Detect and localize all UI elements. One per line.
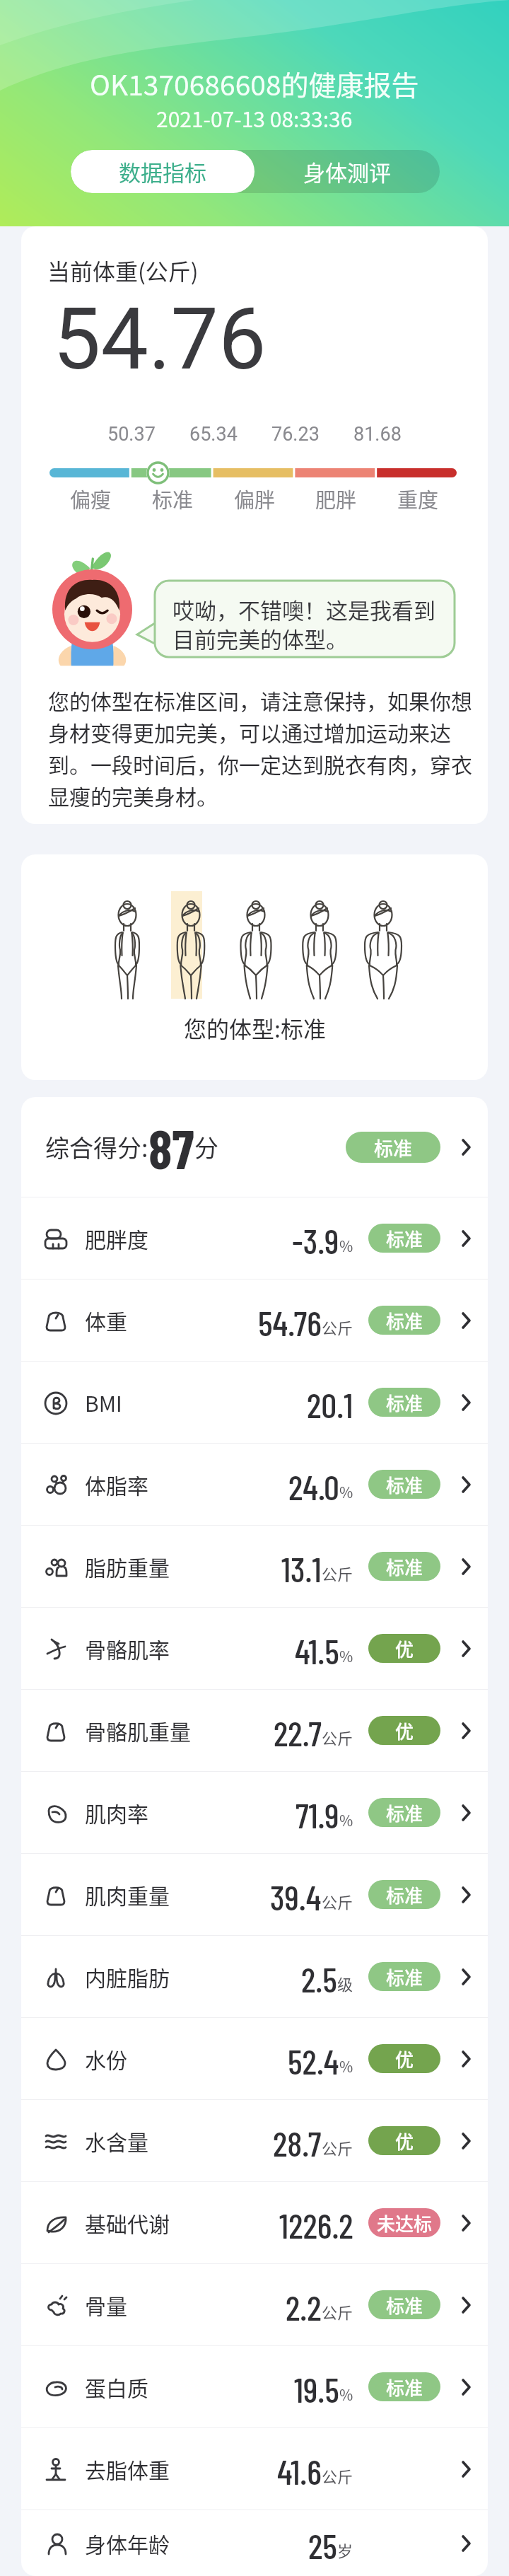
staticText: 岁 <box>337 2539 353 2561</box>
button[interactable]: 查看详情 <box>454 1135 479 1160</box>
staticText: % <box>339 1645 353 1666</box>
button[interactable]: 标准 <box>368 1798 440 1827</box>
staticText: 未达标 <box>377 2210 433 2236</box>
staticText: 标准 <box>386 1471 423 1498</box>
button[interactable]: 标准 <box>368 1306 440 1335</box>
staticText: 标准 <box>386 1963 423 1990</box>
staticText: 重度 <box>397 484 439 514</box>
staticText: 41.6 <box>277 2450 322 2492</box>
staticText: 2.5 <box>301 1958 337 2000</box>
button[interactable]: 脂肪重量 <box>21 1526 488 1607</box>
staticText: 当前体重(公斤) <box>47 254 199 286</box>
staticText: 优 <box>395 1635 414 1662</box>
button[interactable]: 蛋白质 <box>21 2346 488 2427</box>
staticText: 19.5 <box>294 2368 339 2410</box>
button[interactable]: 查看详情 <box>454 1882 479 1908</box>
staticText: 76.23 <box>271 423 320 446</box>
staticText: % <box>339 1809 353 1831</box>
button[interactable]: 水份 <box>21 2018 488 2099</box>
button[interactable]: 内脏脂肪 <box>21 1936 488 2017</box>
button[interactable]: 优 <box>368 2126 440 2155</box>
staticText: 体重 <box>85 1305 127 1335</box>
button[interactable]: 骨骼肌率 <box>21 1608 488 1689</box>
staticText: 公斤 <box>322 1316 353 1338</box>
staticText: 20.1 <box>307 1383 353 1425</box>
button[interactable]: 身体测评 <box>255 150 440 193</box>
button[interactable]: 查看详情 <box>454 1964 479 1990</box>
staticText: 54.76 <box>53 290 267 390</box>
staticText: 39.4 <box>270 1876 322 1918</box>
staticText: 13.1 <box>281 1548 322 1589</box>
button[interactable]: 查看详情 <box>454 1308 479 1333</box>
button[interactable]: 基础代谢 <box>21 2182 488 2263</box>
button[interactable]: 标准 <box>368 1470 440 1499</box>
button[interactable]: 水含量 <box>21 2100 488 2181</box>
staticText: 去脂体重 <box>85 2454 170 2484</box>
button[interactable]: 查看详情 <box>454 1718 479 1744</box>
staticText: 水份 <box>85 2043 127 2074</box>
staticText: 优 <box>395 1717 414 1744</box>
staticText: -3.9 <box>292 1219 339 1261</box>
button[interactable]: 标准 <box>368 2372 440 2401</box>
button[interactable]: 查看详情 <box>454 2456 479 2482</box>
staticText: 数据指标 <box>119 156 206 187</box>
staticText: 公斤 <box>322 1890 353 1913</box>
button[interactable]: 体重 <box>21 1280 488 1361</box>
button[interactable]: 标准 <box>368 1552 440 1581</box>
button[interactable]: 优 <box>368 1634 440 1663</box>
button[interactable]: 肌肉率 <box>21 1772 488 1853</box>
button[interactable]: 标准 <box>346 1132 440 1163</box>
staticText: 骨骼肌重量 <box>85 1715 191 1746</box>
button[interactable]: 查看详情 <box>454 1390 479 1415</box>
button[interactable]: 标准 <box>368 2290 440 2319</box>
button[interactable]: 数据指标 <box>71 150 255 193</box>
staticText: 标准 <box>374 1134 412 1161</box>
button[interactable]: 查看详情 <box>454 1554 479 1579</box>
button[interactable]: 查看详情 <box>454 1636 479 1661</box>
staticText: 优 <box>395 2046 414 2072</box>
button[interactable]: 骨骼肌重量 <box>21 1690 488 1771</box>
staticText: 公斤 <box>322 2136 353 2159</box>
button[interactable]: 标准 <box>368 1388 440 1417</box>
staticText: OK1370686608的健康报告 <box>90 64 419 103</box>
staticText: 水含量 <box>85 2125 148 2156</box>
button[interactable]: 查看详情 <box>454 1800 479 1826</box>
staticText: 公斤 <box>322 2464 353 2487</box>
button[interactable]: 肌肉重量 <box>21 1854 488 1935</box>
staticText: 蛋白质 <box>85 2372 148 2402</box>
button[interactable]: BMI <box>21 1362 488 1443</box>
button[interactable]: 查看详情 <box>454 2292 479 2318</box>
staticText: 肥胖度 <box>85 1223 148 1253</box>
staticText: 54.76 <box>258 1301 322 1343</box>
button[interactable]: 标准 <box>368 1224 440 1253</box>
button[interactable]: 查看详情 <box>454 2210 479 2236</box>
staticText: 87 <box>148 1115 194 1180</box>
button[interactable]: 标准 <box>368 1962 440 1991</box>
staticText: 肌肉重量 <box>85 1879 170 1910</box>
button[interactable]: 未达标 <box>368 2208 440 2237</box>
button[interactable]: 查看详情 <box>454 2046 479 2072</box>
button[interactable]: 优 <box>368 2044 440 2073</box>
staticText: 公斤 <box>322 1726 353 1748</box>
button[interactable]: 标准 <box>368 1880 440 1909</box>
button[interactable]: 骨量 <box>21 2264 488 2345</box>
staticText: 65.34 <box>189 423 238 446</box>
staticText: 标准 <box>386 1307 423 1334</box>
button[interactable]: 身体年龄 <box>21 2510 488 2576</box>
staticText: 24.0 <box>288 1466 339 1507</box>
button[interactable]: 查看详情 <box>454 2374 479 2400</box>
staticText: 优 <box>395 2128 414 2154</box>
staticText: 身体测评 <box>303 156 391 187</box>
staticText: 标准 <box>386 1389 423 1416</box>
button[interactable]: 查看详情 <box>454 1226 479 1251</box>
button[interactable]: 查看详情 <box>454 2531 479 2556</box>
staticText: 公斤 <box>322 1562 353 1584</box>
button[interactable]: 综合得分: <box>21 1097 488 1197</box>
button[interactable]: 优 <box>368 1716 440 1745</box>
button[interactable]: 肥胖度 <box>21 1197 488 1279</box>
staticText: 公斤 <box>322 2300 353 2323</box>
button[interactable]: 查看详情 <box>454 1472 479 1497</box>
button[interactable]: 去脂体重 <box>21 2428 488 2510</box>
button[interactable]: 查看详情 <box>454 2128 479 2154</box>
button[interactable]: 体脂率 <box>21 1444 488 1525</box>
